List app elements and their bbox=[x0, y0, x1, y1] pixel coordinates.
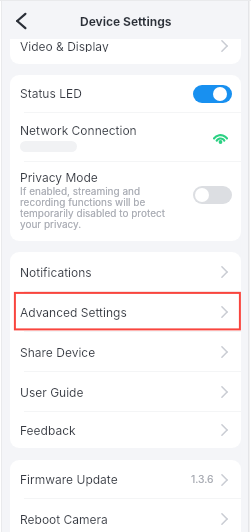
button[interactable]: User Guide bbox=[10, 372, 241, 412]
staticText: Status LED bbox=[20, 86, 82, 101]
button[interactable]: Reboot Camera bbox=[10, 499, 241, 532]
staticText: Reboot Camera bbox=[20, 512, 108, 527]
button[interactable]: Status LED bbox=[10, 75, 241, 112]
staticText: Feedback bbox=[20, 423, 76, 438]
staticText: Privacy Mode bbox=[20, 170, 98, 185]
button[interactable]: Advanced Settings bbox=[10, 292, 241, 332]
button[interactable]: Firmware Update bbox=[10, 460, 241, 499]
button[interactable]: Network Connection bbox=[10, 113, 241, 161]
button[interactable]: Privacy Mode bbox=[10, 162, 241, 241]
staticText: If enabled, streaming and recording func… bbox=[20, 185, 172, 230]
staticText: 1.3.6 bbox=[191, 473, 214, 486]
staticText: Advanced Settings bbox=[20, 305, 127, 320]
staticText: Network Connection bbox=[20, 123, 137, 138]
staticText: Share Device bbox=[20, 345, 96, 360]
staticText: User Guide bbox=[20, 385, 84, 400]
staticText: Device Settings bbox=[80, 14, 172, 29]
button[interactable]: Status LED toggle bbox=[193, 85, 232, 103]
staticText: Firmware Update bbox=[20, 472, 118, 487]
button[interactable]: Back bbox=[2, 1, 38, 39]
button[interactable]: Share Device bbox=[10, 332, 241, 372]
button[interactable]: Video & Display bbox=[10, 39, 241, 52]
button[interactable]: Notifications bbox=[10, 252, 241, 292]
staticText: Notifications bbox=[20, 265, 92, 280]
button[interactable]: Privacy Mode toggle bbox=[193, 186, 232, 204]
button[interactable]: Feedback bbox=[10, 412, 241, 448]
staticText: Video & Display bbox=[20, 39, 109, 52]
